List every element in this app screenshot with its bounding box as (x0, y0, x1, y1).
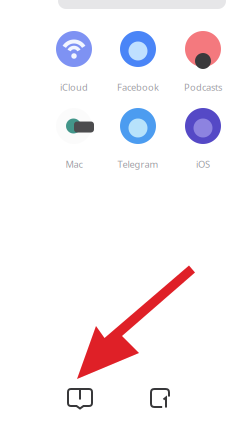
staticText: Mac (65, 158, 82, 170)
button[interactable]: Bookmarks (56, 381, 104, 415)
staticText: iOS (196, 158, 210, 170)
staticText: iCloud (60, 81, 88, 93)
button[interactable]: Mac (44, 108, 104, 170)
button[interactable]: iCloud (44, 31, 104, 93)
staticText: Telegram (117, 158, 158, 170)
staticText: Podcasts (184, 81, 222, 93)
button[interactable]: iOS (173, 108, 230, 170)
button[interactable]: Tabs (140, 381, 188, 415)
button[interactable]: Podcasts (173, 31, 230, 93)
button[interactable]: Telegram (108, 108, 168, 170)
staticText: Facebook (117, 81, 159, 93)
button[interactable]: Facebook (108, 31, 168, 93)
